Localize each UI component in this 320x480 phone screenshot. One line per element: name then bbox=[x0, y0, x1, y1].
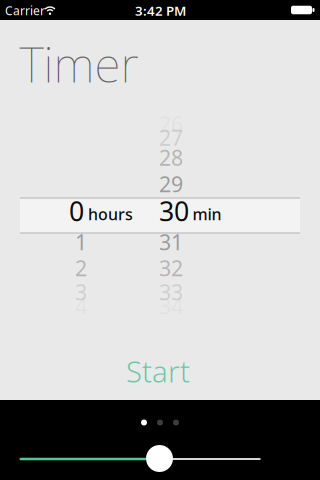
staticText: min bbox=[192, 203, 221, 225]
staticText: 32 bbox=[159, 254, 183, 282]
staticText: 30 bbox=[159, 193, 189, 229]
staticText: 1 bbox=[75, 228, 87, 256]
staticText: 3:42 PM bbox=[135, 2, 186, 19]
button[interactable]: Page control bbox=[122, 412, 198, 432]
staticText: 3 bbox=[75, 278, 87, 306]
staticText: 26 bbox=[159, 110, 183, 138]
staticText: 0 bbox=[69, 193, 84, 229]
staticText: 28 bbox=[159, 143, 183, 172]
button[interactable]: Start bbox=[88, 349, 228, 393]
staticText: 33 bbox=[159, 278, 183, 306]
staticText: 4 bbox=[75, 292, 87, 320]
staticText: 34 bbox=[159, 292, 183, 320]
staticText: 29 bbox=[159, 170, 183, 198]
staticText: 31 bbox=[159, 228, 183, 256]
staticText: hours bbox=[88, 203, 133, 225]
button[interactable]: Slider bbox=[146, 445, 173, 472]
staticText: 2 bbox=[75, 254, 87, 282]
staticText: 27 bbox=[159, 123, 183, 152]
staticText: Timer bbox=[19, 32, 138, 96]
staticText: Start bbox=[126, 351, 190, 390]
staticText: Carrier bbox=[5, 2, 45, 18]
